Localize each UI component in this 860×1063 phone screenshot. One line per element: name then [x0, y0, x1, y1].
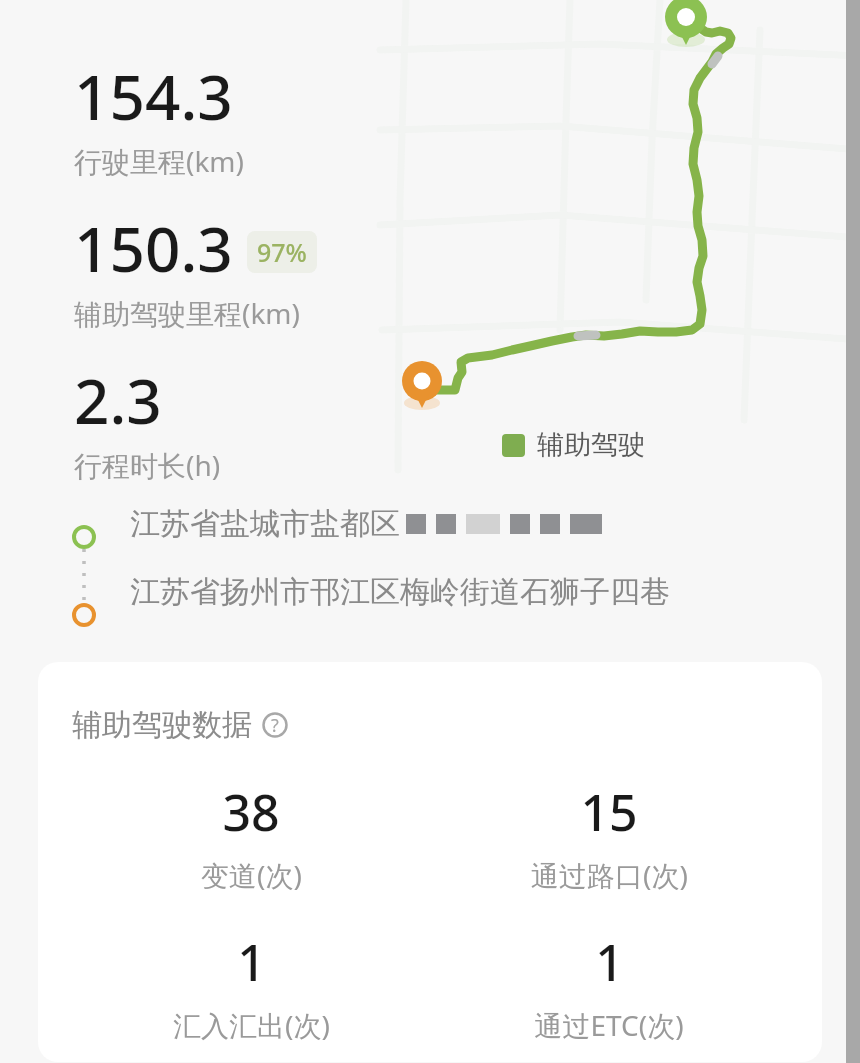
staticText: 154.3: [74, 54, 233, 138]
staticText: 江苏省扬州市邗江区梅岭街道石狮子四巷: [130, 573, 670, 611]
button[interactable]: 帮助: [260, 710, 290, 740]
staticText: 2.3: [74, 358, 162, 442]
button[interactable]: 辅助驾驶: [502, 428, 645, 462]
staticText: ?: [271, 713, 279, 738]
staticText: 通过路口(次): [531, 856, 688, 894]
staticText: 行程时长(h): [74, 446, 221, 484]
staticText: 汇入汇出(次): [173, 1006, 330, 1044]
staticText: 通过ETC(次): [534, 1006, 684, 1044]
button[interactable]: 38: [72, 778, 430, 894]
staticText: 97%: [257, 235, 307, 269]
staticText: 变道(次): [201, 856, 302, 894]
staticText: 辅助驾驶: [537, 428, 645, 462]
staticText: 1: [237, 928, 266, 996]
button[interactable]: 辅助驾驶数据: [38, 662, 822, 1062]
button[interactable]: 1: [72, 928, 430, 1044]
staticText: 辅助驾驶里程(km): [74, 294, 300, 332]
staticText: 江苏省盐城市盐都区: [130, 505, 400, 543]
staticText: 辅助驾驶数据: [72, 706, 252, 744]
button[interactable]: 15: [430, 778, 788, 894]
staticText: 1: [595, 928, 624, 996]
staticText: 150.3: [74, 206, 233, 290]
staticText: 15: [580, 778, 638, 846]
staticText: 38: [222, 778, 280, 846]
staticText: 行驶里程(km): [74, 142, 244, 180]
button[interactable]: 1: [430, 928, 788, 1044]
